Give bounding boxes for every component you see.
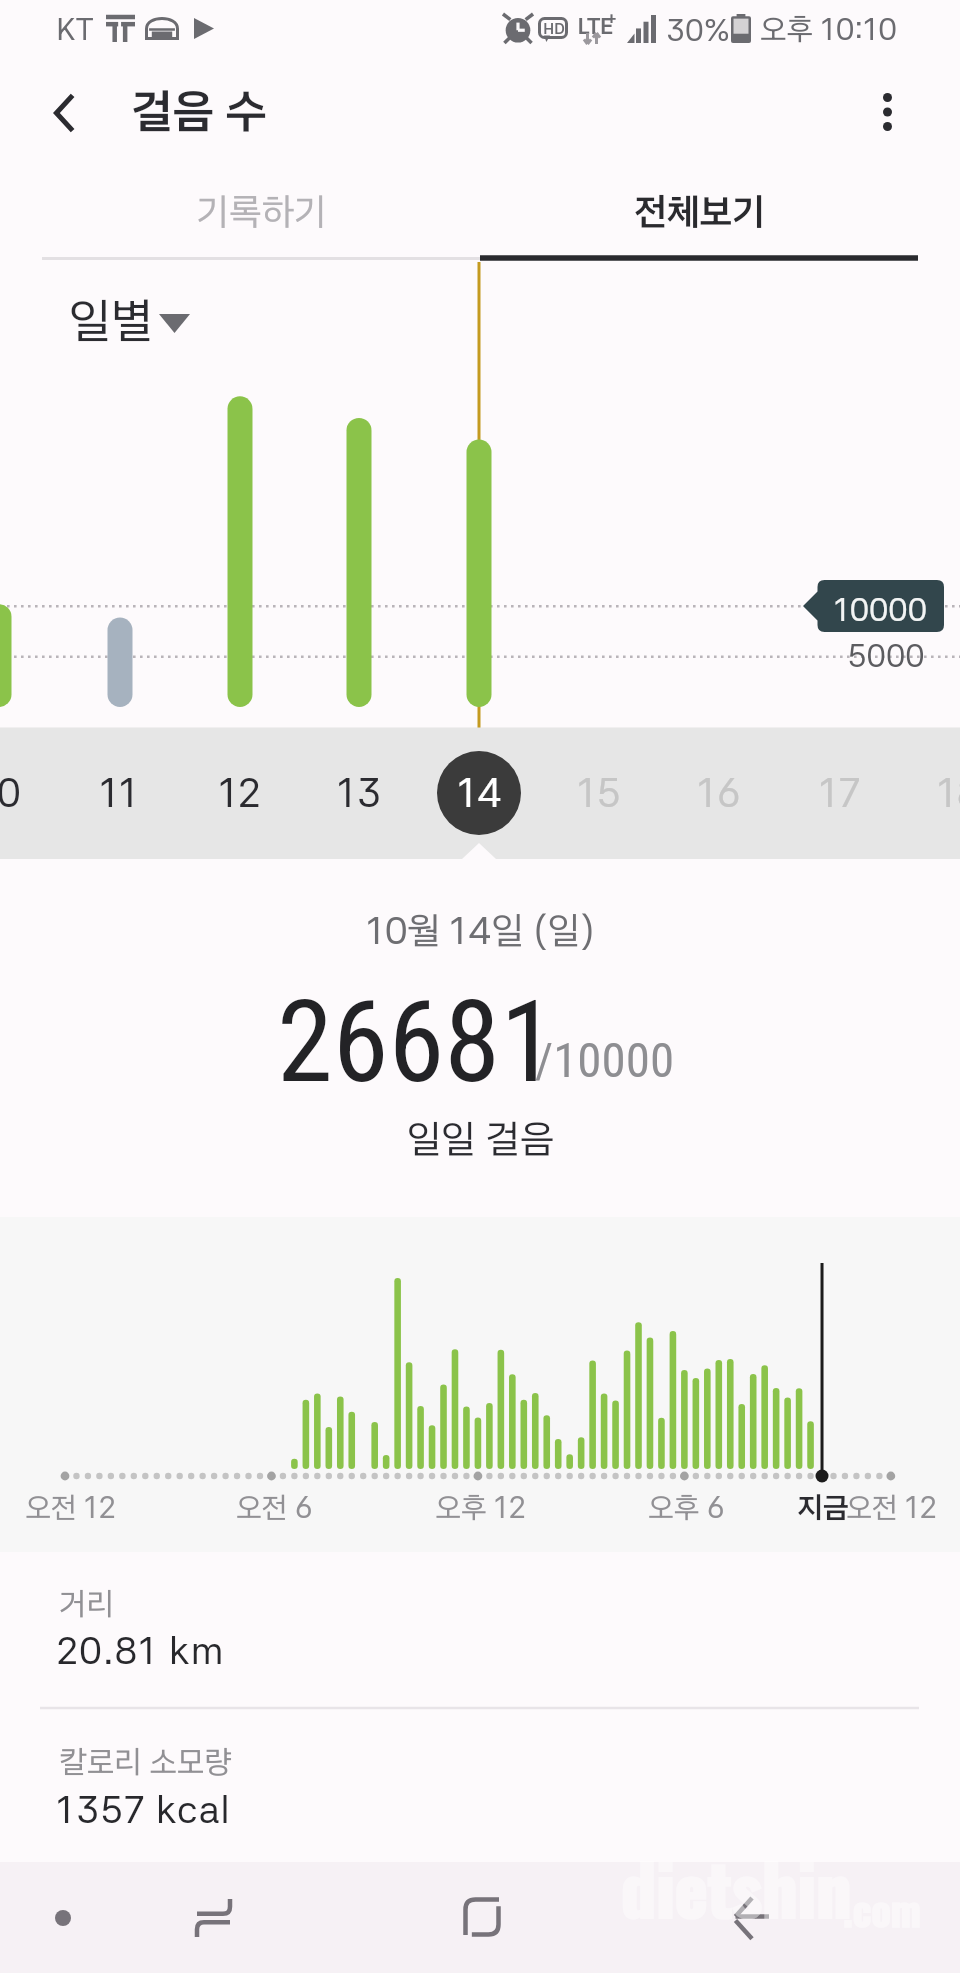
staticText: + xyxy=(606,8,617,28)
button[interactable]: 16 xyxy=(677,751,761,835)
staticText: 일별 xyxy=(69,291,153,349)
staticText: 오전 12 xyxy=(25,1489,116,1525)
staticText: 지금 xyxy=(797,1489,849,1525)
staticText: 오전 12 xyxy=(846,1489,937,1525)
staticText: 1357 kcal xyxy=(56,1787,231,1832)
staticText: 칼로리 소모량 xyxy=(59,1743,232,1781)
staticText: 13 xyxy=(337,769,381,817)
button[interactable]: Assistant xyxy=(23,1878,103,1958)
staticText: 17 xyxy=(819,769,860,817)
staticText: LTE xyxy=(577,12,614,39)
button[interactable]: 13 xyxy=(317,751,401,835)
staticText: 걸음 수 xyxy=(131,82,267,139)
staticText: 오후 6 xyxy=(648,1489,725,1525)
button[interactable]: Recent apps xyxy=(173,1878,253,1958)
staticText: HD xyxy=(543,20,565,38)
staticText: 전체보기 xyxy=(634,189,765,234)
staticText: 10 xyxy=(0,769,21,817)
staticText: 기록하기 xyxy=(196,189,327,234)
staticText: 20.81 km xyxy=(56,1628,225,1673)
staticText: 14 xyxy=(457,769,502,817)
button[interactable]: Back xyxy=(712,1878,792,1958)
button[interactable]: 17 xyxy=(797,751,881,835)
staticText: 일일 걸음 xyxy=(407,1115,554,1163)
staticText: 30% xyxy=(666,11,730,48)
button[interactable]: 전체보기 xyxy=(480,173,918,249)
staticText: 12 xyxy=(218,769,261,817)
button[interactable]: 14 xyxy=(437,751,521,835)
staticText: KT xyxy=(56,10,94,47)
staticText: 오후 10:10 xyxy=(760,10,897,47)
button[interactable]: 15 xyxy=(557,751,641,835)
staticText: 16 xyxy=(697,769,741,817)
staticText: /10000 xyxy=(535,1032,675,1089)
button[interactable]: 일별 xyxy=(55,285,215,355)
staticText: 5000 xyxy=(847,637,925,675)
staticText: 26681 xyxy=(277,976,556,1108)
button[interactable]: 10 xyxy=(0,751,41,835)
staticText: 10000 xyxy=(834,591,927,629)
button[interactable]: 11 xyxy=(77,751,161,835)
button[interactable]: Back xyxy=(24,73,104,153)
button[interactable] xyxy=(0,1709,960,1862)
staticText: 오후 12 xyxy=(435,1489,526,1525)
button[interactable]: Home xyxy=(442,1877,522,1957)
button[interactable]: 기록하기 xyxy=(42,173,480,249)
button[interactable]: More options xyxy=(847,72,927,152)
staticText: 오전 6 xyxy=(236,1489,313,1525)
staticText: 11 xyxy=(99,769,139,817)
staticText: dietshin xyxy=(621,1834,852,1938)
button[interactable] xyxy=(0,1552,960,1709)
staticText: 10월 14일 (일) xyxy=(366,908,595,953)
button[interactable]: 12 xyxy=(197,751,281,835)
staticText: 15 xyxy=(577,769,621,817)
button[interactable]: 18 xyxy=(917,751,960,835)
staticText: 18 xyxy=(937,769,960,817)
staticText: 거리 xyxy=(59,1585,114,1623)
